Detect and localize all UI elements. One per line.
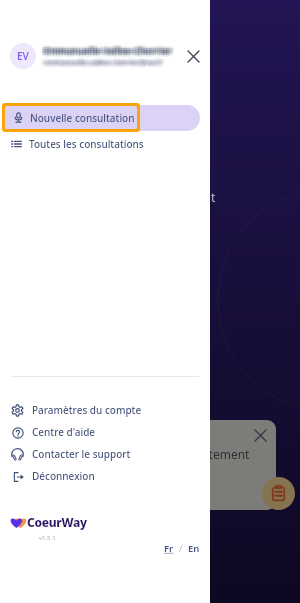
staticText: Emmanuelle Vallee-Cherrier [47,45,175,57]
staticText: Déconnexion [32,469,95,483]
staticText: Emmanuelle Vallee-Cherrier [47,46,175,58]
button[interactable]: Déconnexion [0,466,210,486]
staticText: Emmanuelle Vallee-Cherrier [43,44,171,56]
staticText: Emmanuelle Vallee-Cherrier [47,43,175,55]
button[interactable]: CoeurWay [11,513,87,531]
button[interactable]: Close drawer [182,45,204,67]
staticText: Contacter le support [32,447,131,461]
staticText: emmanuelle.vallee-cherrier@cw.fr [47,55,166,65]
button[interactable]: Toutes les consultations [0,134,210,154]
staticText: emmanuelle.vallee-cherrier@cw.fr [41,59,160,69]
staticText: emmanuelle.vallee-cherrier@cw.fr [42,60,161,70]
staticText: emmanuelle.vallee-cherrier@cw.fr [45,56,164,66]
staticText: Emmanuelle Vallee-Cherrier [41,44,169,56]
staticText: Centre d'aide [32,425,96,439]
staticText: Emmanuelle Vallee-Cherrier [47,41,175,53]
staticText: emmanuelle.vallee-cherrier@cw.fr [43,59,162,69]
staticText: emmanuelle.vallee-cherrier@cw.fr [45,57,164,67]
staticText: emmanuelle.vallee-cherrier@cw.fr [45,59,164,69]
staticText: Consultant [154,189,216,205]
button[interactable]: Centre d'aide [0,422,210,442]
staticText: emmanuelle.vallee-cherrier@cw.fr [44,59,163,69]
staticText: emmanuelle.vallee-cherrier@cw.fr [43,55,162,65]
staticText: Emmanuelle Vallee-Cherrier [41,47,169,59]
staticText: Emmanuelle Vallee-Cherrier [41,43,169,55]
staticText: Emmanuelle Vallee-Cherrier [43,42,171,54]
staticText: Emmanuelle Vallee-Cherrier [44,43,172,55]
staticText: emmanuelle.vallee-cherrier@cw.fr [41,59,160,69]
staticText: emmanuelle.vallee-cherrier@cw.fr [47,59,166,69]
staticText: emmanuelle.vallee-cherrier@cw.fr [47,57,166,67]
staticText: Fr [164,542,174,555]
staticText: emmanuelle.vallee-cherrier@cw.fr [42,57,161,67]
staticText: emmanuelle.vallee-cherrier@cw.fr [41,58,160,68]
staticText: emmanuelle.vallee-cherrier@cw.fr [42,59,161,69]
staticText: emmanuelle.vallee-cherrier@cw.fr [44,57,163,67]
staticText: v1.5.1 [39,534,56,542]
staticText: emmanuelle.vallee-cherrier@cw.fr [47,57,166,67]
button[interactable]: Close [249,424,271,446]
staticText: emmanuelle.vallee-cherrier@cw.fr [42,58,161,68]
button[interactable]: Notes [262,477,295,510]
staticText: Emmanuelle Vallee-Cherrier [41,45,169,57]
staticText: emmanuelle.vallee-cherrier@cw.fr [42,61,161,71]
staticText: emmanuelle.vallee-cherrier@cw.fr [45,60,164,70]
staticText: Emmanuelle Vallee-Cherrier [42,47,170,59]
staticText: emmanuelle.vallee-cherrier@cw.fr [44,61,163,71]
staticText: Emmanuelle Vallee-Cherrier [47,43,175,55]
staticText: Emmanuelle Vallee-Cherrier [44,45,172,57]
staticText: Emmanuelle Vallee-Cherrier [46,43,174,55]
staticText: Emmanuelle Vallee-Cherrier [43,43,171,55]
button[interactable]: Paramètres du compte [0,400,210,420]
staticText: emmanuelle.vallee-cherrier@cw.fr [43,57,162,67]
staticText: emmanuelle.vallee-cherrier@cw.fr [41,60,160,70]
staticText: Emmanuelle Vallee-Cherrier [46,42,174,54]
staticText: Emmanuelle Vallee-Cherrier [45,47,173,59]
staticText: emmanuelle.vallee-cherrier@cw.fr [46,57,165,67]
staticText: Emmanuelle Vallee-Cherrier [45,46,173,58]
staticText: emmanuelle.vallee-cherrier@cw.fr [47,59,166,69]
staticText: Emmanuelle Vallee-Cherrier [47,46,175,58]
staticText: emmanuelle.vallee-cherrier@cw.fr [46,57,165,67]
staticText: emmanuelle.vallee-cherrier@cw.fr [45,61,164,71]
staticText: Emmanuelle Vallee-Cherrier [42,43,170,55]
staticText: emmanuelle.vallee-cherrier@cw.fr [43,61,162,71]
staticText: Emmanuelle Vallee-Cherrier [44,47,172,59]
staticText: Emmanuelle Vallee-Cherrier [41,46,169,58]
staticText: Emmanuelle Vallee-Cherrier [46,41,174,53]
staticText: Emmanuelle Vallee-Cherrier [44,43,172,55]
staticText: Emmanuelle Vallee-Cherrier [44,42,172,54]
button[interactable]: Nouvelle consultation [5,106,137,129]
staticText: Emmanuelle Vallee-Cherrier [45,42,173,54]
staticText: CoeurWay [27,514,87,530]
button[interactable]: En [188,542,200,555]
staticText: Paramètres du compte [32,403,142,417]
staticText: emmanuelle.vallee-cherrier@cw.fr [44,57,163,67]
staticText: Emmanuelle Vallee-Cherrier [41,43,169,55]
staticText: emmanuelle.vallee-cherrier@cw.fr [47,58,166,68]
staticText: Emmanuelle Vallee-Cherrier [41,47,169,59]
staticText: Emmanuelle Vallee-Cherrier [45,44,173,56]
staticText: Emmanuelle Vallee-Cherrier [41,42,169,54]
button[interactable]: Contacter le support [0,444,210,464]
staticText: emmanuelle.vallee-cherrier@cw.fr [47,58,166,68]
staticText: emmanuelle.vallee-cherrier@cw.fr [43,60,162,70]
staticText: Emmanuelle Vallee-Cherrier [45,43,173,55]
staticText: Emmanuelle Vallee-Cherrier [47,45,175,57]
staticText: Emmanuelle Vallee-Cherrier [42,43,170,55]
staticText: Emmanuelle Vallee-Cherrier [43,47,171,59]
staticText: emmanuelle.vallee-cherrier@cw.fr [45,58,164,68]
staticText: Emmanuelle Vallee-Cherrier [41,43,169,55]
staticText: emmanuelle.vallee-cherrier@cw.fr [41,57,160,67]
staticText: emmanuelle.vallee-cherrier@cw.fr [44,59,163,69]
staticText: emmanuelle.vallee-cherrier@cw.fr [46,60,165,70]
staticText: emmanuelle.vallee-cherrier@cw.fr [42,59,161,69]
staticText: Emmanuelle Vallee-Cherrier [47,42,175,54]
staticText: Emmanuelle Vallee-Cherrier [42,41,170,53]
staticText: emmanuelle.vallee-cherrier@cw.fr [46,61,165,71]
staticText: emmanuelle.vallee-cherrier@cw.fr [41,59,160,69]
staticText: Emmanuelle Vallee-Cherrier [42,45,170,57]
button[interactable]: Fr [164,542,174,555]
staticText: Emmanuelle Vallee-Cherrier [46,46,174,58]
staticText: Emmanuelle Vallee-Cherrier [42,45,170,57]
